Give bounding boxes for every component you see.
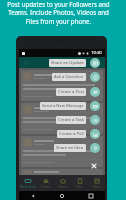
staticText: Teams xyxy=(41,185,51,189)
button[interactable]: Create a Poll xyxy=(19,129,100,139)
staticText: Work Feed xyxy=(20,185,36,189)
button[interactable]: Work Feed xyxy=(19,175,37,191)
button[interactable]: Home xyxy=(54,175,71,191)
button[interactable]: Create a Post xyxy=(19,87,100,97)
button[interactable]: Files xyxy=(71,175,88,191)
button[interactable]: Share an Update xyxy=(19,58,100,68)
staticText: Send a New Message xyxy=(42,103,84,109)
staticText: Home xyxy=(58,185,68,189)
button[interactable]: Home xyxy=(47,191,76,200)
button[interactable]: Ask a Question xyxy=(19,72,100,82)
staticText: Post updates to your Followers and Teams… xyxy=(7,0,110,26)
staticText: Ask a Question xyxy=(54,74,84,80)
button[interactable]: Create a Task xyxy=(19,115,100,125)
staticText: Create a Post xyxy=(58,89,84,95)
button[interactable]: Teams xyxy=(37,175,54,191)
staticText: Files xyxy=(76,185,83,189)
button[interactable]: Menu xyxy=(22,59,29,66)
button[interactable] xyxy=(21,70,103,101)
staticText: Create a Task xyxy=(58,117,84,123)
staticText: More xyxy=(93,185,101,189)
staticText: Create a Poll xyxy=(59,131,84,137)
button[interactable]: More xyxy=(88,175,105,191)
button[interactable] xyxy=(21,136,103,167)
button[interactable]: Recent apps xyxy=(76,191,105,200)
staticText: Share an Idea xyxy=(56,145,84,151)
button[interactable]: Back xyxy=(19,191,47,200)
staticText: 10:30 xyxy=(91,50,102,56)
staticText: Share an Update xyxy=(51,60,84,66)
button[interactable] xyxy=(21,103,103,134)
button[interactable]: Close menu xyxy=(89,161,99,171)
button[interactable] xyxy=(21,169,103,175)
button[interactable]: Send a New Message xyxy=(19,101,100,111)
button[interactable]: Share an Idea xyxy=(19,143,100,153)
